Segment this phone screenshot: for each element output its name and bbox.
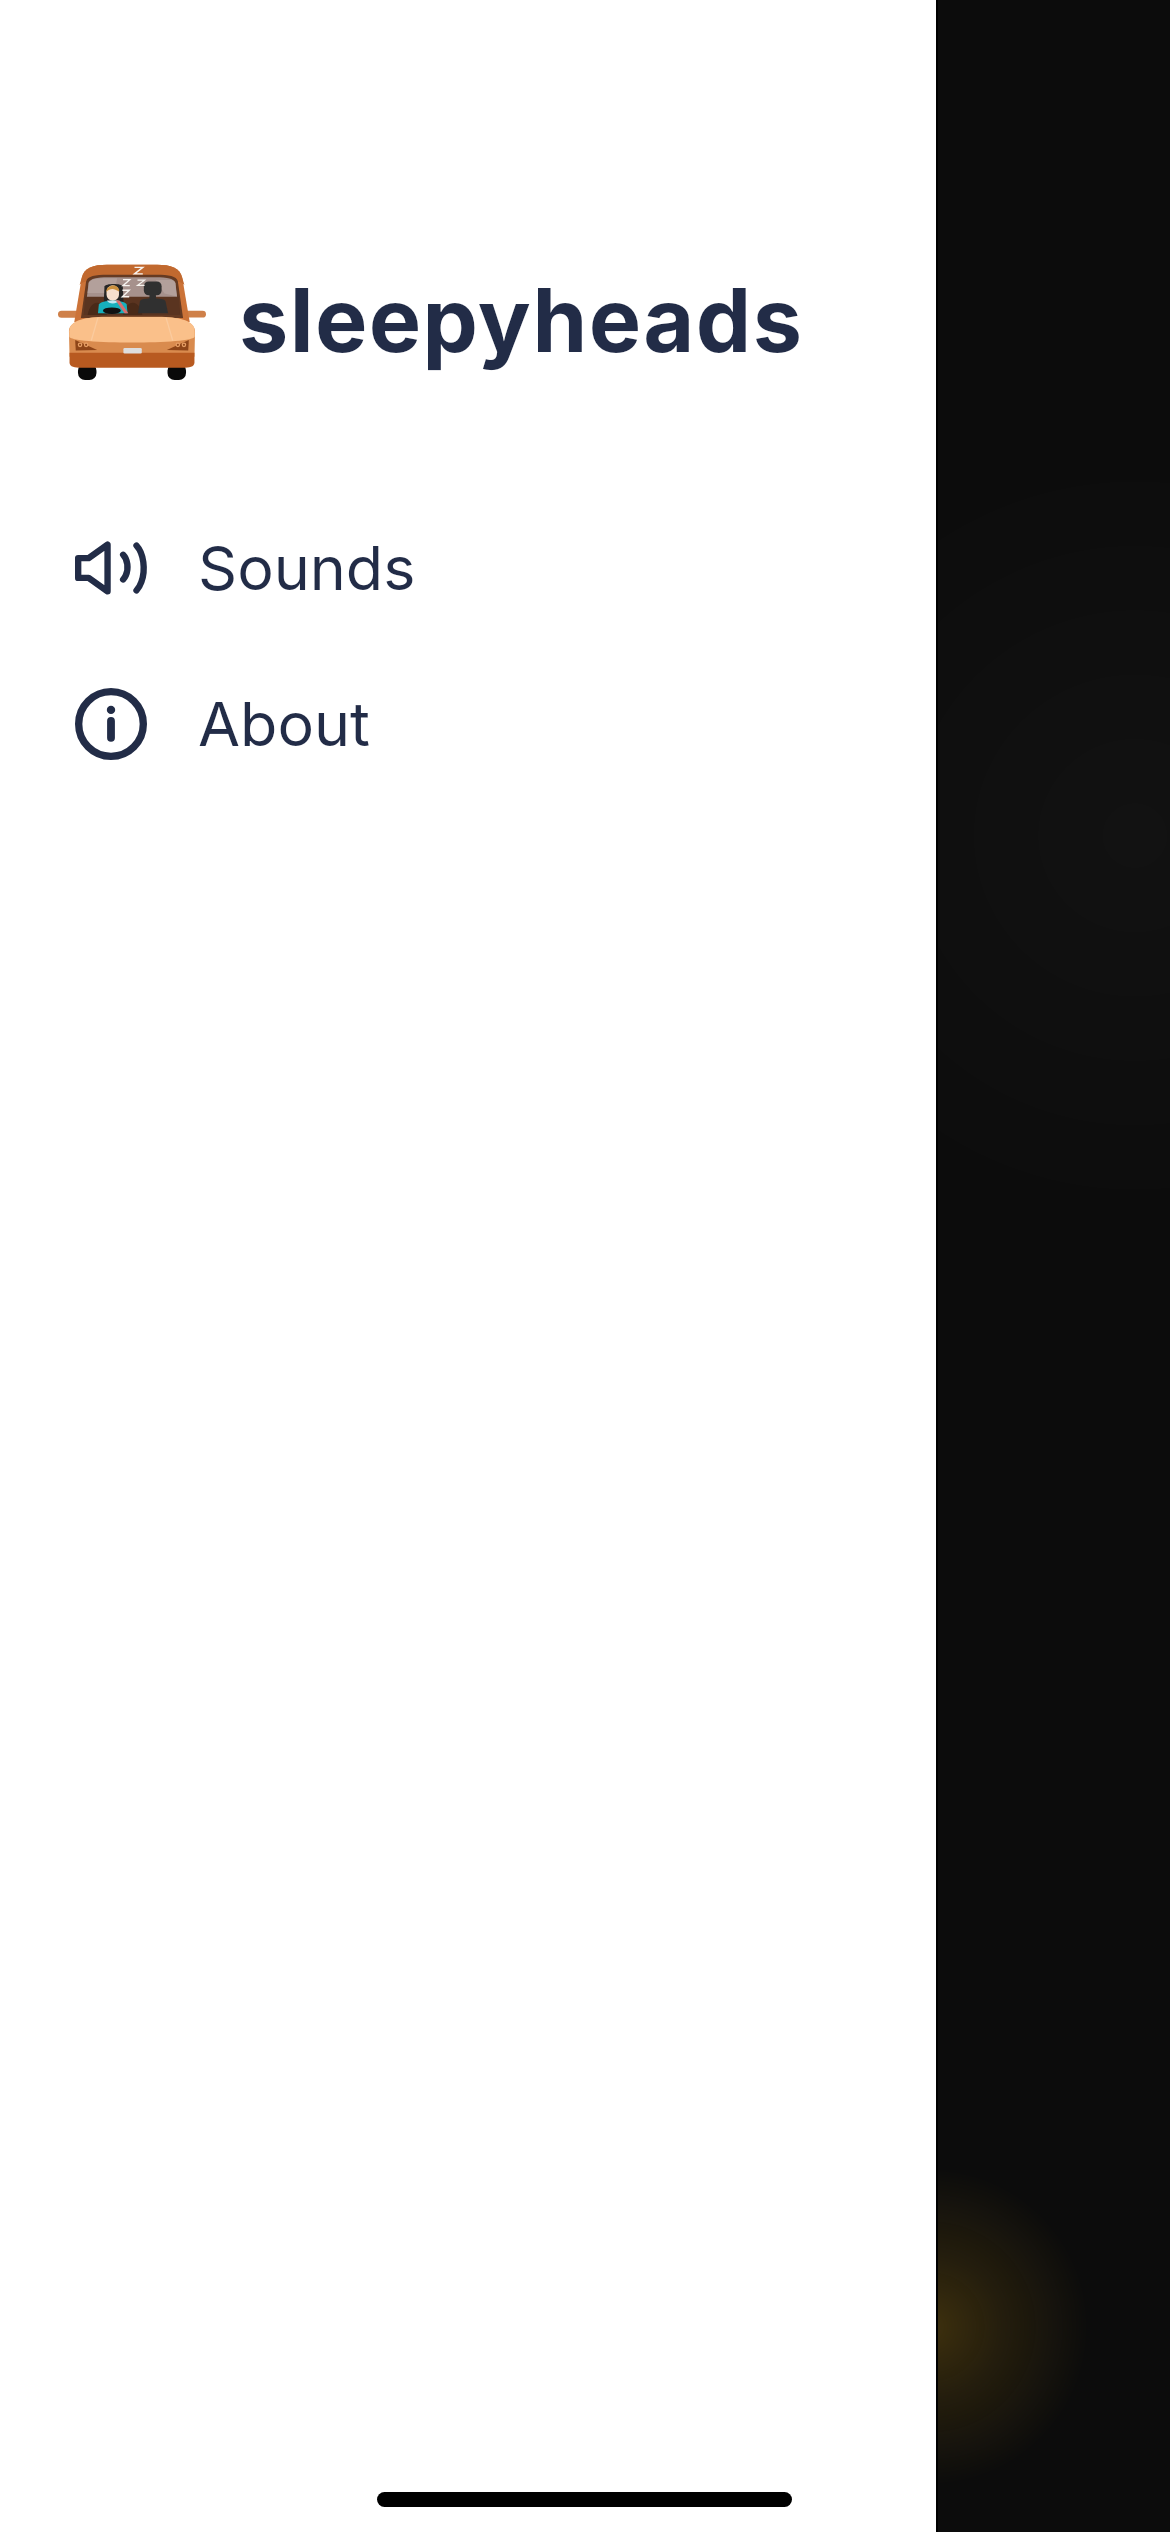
staticText: Sounds [198,531,416,605]
staticText: sleepyheads [239,267,804,373]
button[interactable]: About [0,646,936,802]
button[interactable]: Close navigation drawer [936,0,1170,2532]
button[interactable]: Sounds [0,490,936,646]
staticText: About [198,687,371,761]
